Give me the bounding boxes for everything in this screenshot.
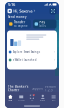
button[interactable]: Hi, Saxena xyxy=(7,8,35,14)
staticText: Transfer xyxy=(14,20,25,24)
button[interactable]: More xyxy=(48,92,59,104)
button[interactable]: Accounts xyxy=(16,92,27,104)
staticText: 5:16 xyxy=(8,2,15,7)
staticText: to anyone xyxy=(14,24,28,28)
button[interactable]: Explore Smart Savings xyxy=(7,48,57,56)
button[interactable]: eWallet launched xyxy=(7,56,57,64)
button[interactable]: Pay xyxy=(33,19,56,28)
staticText: Support xyxy=(32,87,43,90)
staticText: eWallet launched xyxy=(13,58,37,62)
staticText: Version 1.2.3 xyxy=(45,85,56,92)
staticText: Explore Smart Savings xyxy=(13,50,40,54)
staticText: Insights xyxy=(40,100,45,101)
staticText: bills xyxy=(39,24,45,28)
button[interactable]: Transfer xyxy=(7,19,31,28)
staticText: Home xyxy=(8,100,12,101)
button[interactable]: Pay xyxy=(27,92,37,104)
button[interactable]: Home xyxy=(5,92,16,104)
staticText: Pay xyxy=(39,20,44,24)
button[interactable]: Version 1.2.3 xyxy=(45,85,56,92)
staticText: More xyxy=(52,100,56,101)
staticText: Pay xyxy=(30,100,33,101)
button[interactable]: Insights xyxy=(37,92,48,104)
button[interactable]: Support xyxy=(32,87,43,90)
staticText: Send money xyxy=(8,15,26,19)
staticText: The Banker's Charter xyxy=(8,85,28,92)
staticText: Hi, Saxena xyxy=(13,8,32,14)
button[interactable]: Scan xyxy=(49,7,56,14)
staticText: Accounts xyxy=(18,100,25,101)
